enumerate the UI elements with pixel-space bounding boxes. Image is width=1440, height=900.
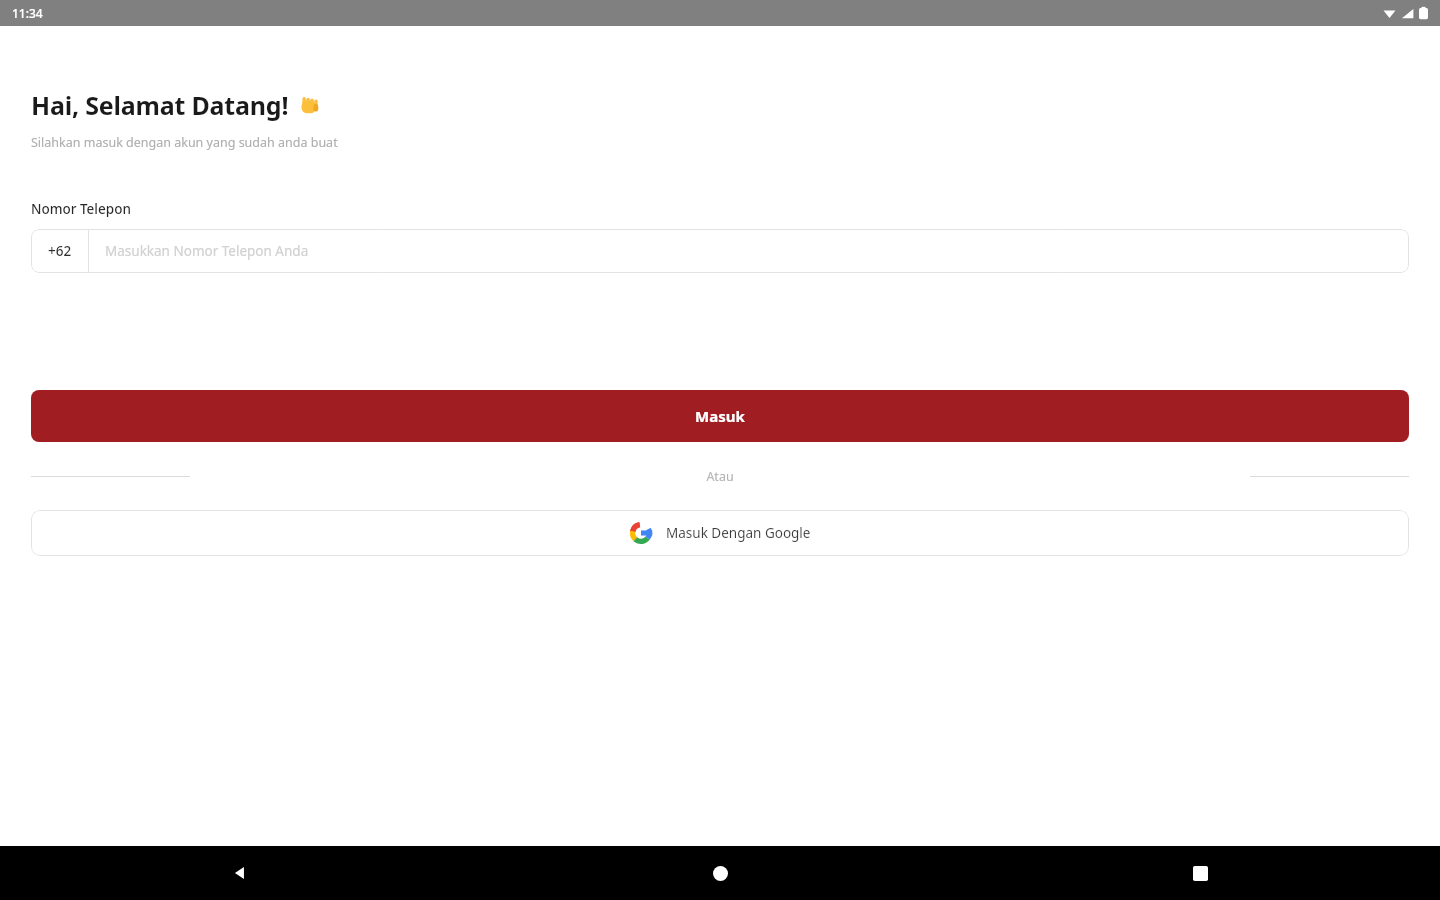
- staticText: Hai, Selamat Datang!: [31, 88, 289, 122]
- staticText: Masuk: [695, 406, 745, 426]
- staticText: Masukkan Nomor Telepon Anda: [105, 242, 309, 260]
- staticText: Atau: [706, 468, 734, 485]
- button[interactable]: Recent apps: [960, 846, 1440, 900]
- staticText: Nomor Telepon: [31, 200, 131, 218]
- button[interactable]: Masuk Dengan Google: [31, 510, 1409, 556]
- staticText: +62: [48, 242, 72, 260]
- staticText: 11:34: [12, 5, 43, 21]
- button[interactable]: Home: [480, 846, 960, 900]
- button[interactable]: Masuk: [31, 390, 1409, 442]
- staticText: Masuk Dengan Google: [666, 524, 811, 542]
- button[interactable]: +62: [31, 229, 1409, 273]
- staticText: Silahkan masuk dengan akun yang sudah an…: [31, 134, 338, 151]
- button[interactable]: Back: [0, 846, 480, 900]
